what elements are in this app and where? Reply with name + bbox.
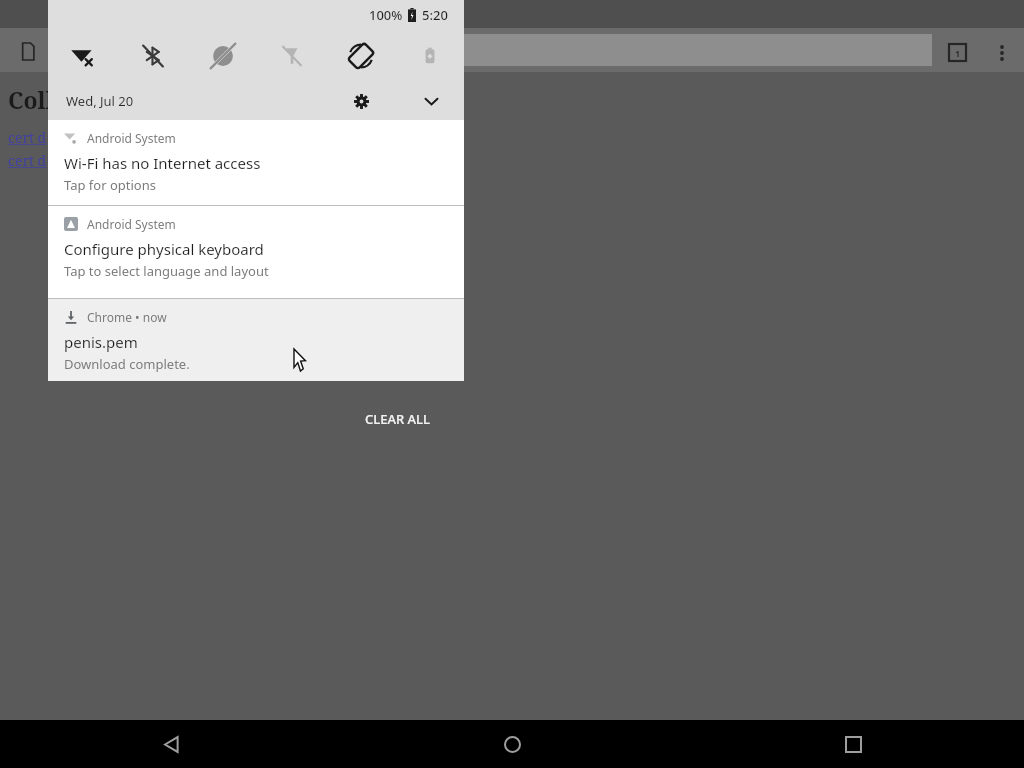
- staticText: Configure physical keyboard: [64, 239, 264, 259]
- button[interactable]: Back: [0, 720, 342, 768]
- button[interactable]: Reader mode: [14, 37, 42, 65]
- button[interactable]: Do not disturb: [188, 30, 257, 82]
- staticText: Chrome • now: [87, 309, 167, 325]
- button[interactable]: Android System: [48, 120, 464, 205]
- button[interactable]: Wi-Fi: [48, 30, 118, 82]
- staticText: penis.pem: [64, 332, 138, 352]
- staticText: 5:20: [422, 6, 448, 24]
- staticText: 100%: [369, 6, 403, 24]
- staticText: Wi-Fi has no Internet access: [64, 153, 261, 173]
- button[interactable]: Expand: [414, 84, 448, 118]
- staticText: Wed, Jul 20: [66, 92, 134, 110]
- staticText: Android System: [87, 216, 176, 232]
- staticText: Coll: [8, 84, 54, 115]
- button[interactable]: Recents: [683, 720, 1024, 768]
- staticText: cert d: [8, 151, 47, 170]
- staticText: CLEAR ALL: [365, 410, 430, 428]
- button[interactable]: More options: [988, 39, 1015, 66]
- button[interactable]: Battery saver: [395, 30, 464, 82]
- button[interactable]: Tabs: [944, 39, 971, 66]
- button[interactable]: Settings: [344, 84, 378, 118]
- staticText: Android System: [87, 130, 176, 146]
- button[interactable]: CLEAR ALL: [330, 400, 464, 438]
- button[interactable]: Flashlight: [257, 30, 326, 82]
- staticText: Tap to select language and layout: [64, 262, 269, 280]
- button[interactable]: Home: [342, 720, 683, 768]
- button[interactable]: Chrome • now: [48, 299, 464, 381]
- button[interactable]: Auto rotate: [326, 30, 395, 82]
- staticText: 1: [955, 47, 961, 59]
- staticText: Download complete.: [64, 355, 190, 373]
- button[interactable]: Android System: [48, 206, 464, 298]
- staticText: Tap for options: [64, 176, 156, 194]
- button[interactable]: Bluetooth: [118, 30, 188, 82]
- staticText: cert d: [8, 128, 47, 147]
